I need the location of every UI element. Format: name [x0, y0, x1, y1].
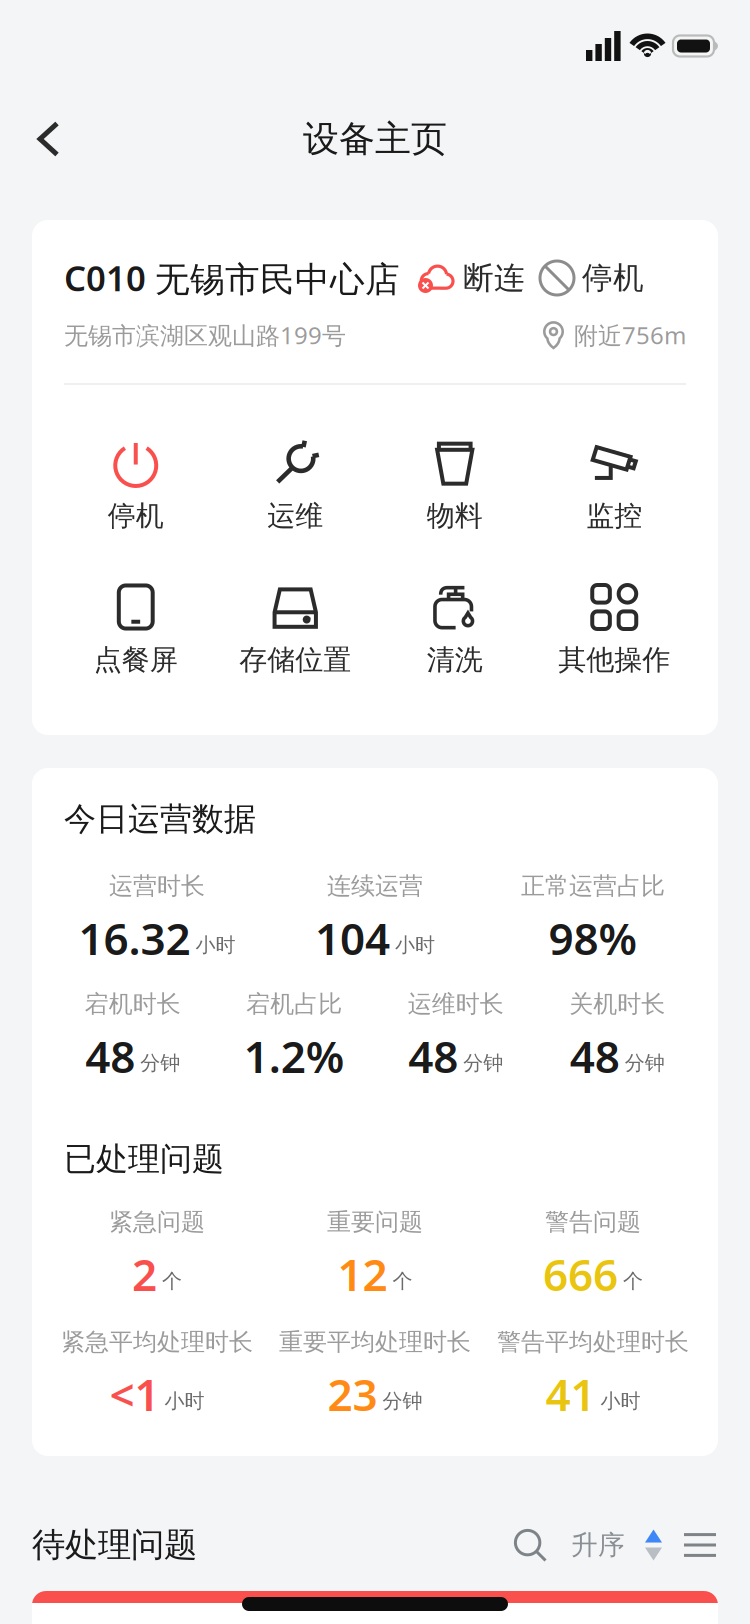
staticText: <1: [109, 1365, 159, 1423]
staticText: 分钟: [463, 1051, 503, 1075]
staticText: 附近756m: [574, 319, 686, 351]
staticText: 666: [543, 1245, 618, 1303]
staticText: 48: [85, 1027, 135, 1085]
staticText: 警告平均处理时长: [497, 1327, 689, 1357]
staticText: 监控: [586, 499, 642, 533]
button[interactable]: 存储位置: [215, 585, 375, 675]
staticText: 1.2%: [244, 1027, 345, 1085]
staticText: 待处理问题: [32, 1524, 197, 1565]
staticText: 小时: [164, 1389, 204, 1413]
staticText: 宕机时长: [85, 989, 181, 1019]
staticText: 设备主页: [303, 117, 447, 161]
staticText: 重要平均处理时长: [279, 1327, 471, 1357]
button[interactable]: 搜索: [513, 1528, 547, 1562]
staticText: 重要问题: [327, 1207, 423, 1237]
staticText: 41: [545, 1365, 595, 1423]
staticText: 紧急问题: [109, 1207, 205, 1237]
staticText: 存储位置: [239, 643, 351, 677]
staticText: 104: [315, 909, 390, 967]
staticText: 分钟: [382, 1389, 422, 1413]
staticText: 23: [327, 1365, 377, 1423]
staticText: 紧急平均处理时长: [61, 1327, 253, 1357]
button[interactable]: 运维: [215, 441, 375, 531]
staticText: 12: [337, 1245, 387, 1303]
staticText: 停机: [582, 259, 644, 297]
button[interactable]: 停机: [56, 441, 215, 531]
staticText: 小时: [395, 933, 435, 957]
staticText: 连续运营: [327, 871, 423, 901]
staticText: 警告问题: [545, 1207, 641, 1237]
staticText: 清洗: [427, 643, 483, 677]
button[interactable]: 点餐屏: [56, 585, 215, 675]
staticText: 16.32: [78, 909, 190, 967]
button[interactable]: 监控: [534, 441, 694, 531]
button[interactable]: 清洗: [375, 585, 534, 675]
staticText: 2: [132, 1245, 157, 1303]
staticText: 停机: [108, 499, 164, 533]
staticText: 无锡市滨湖区观山路199号: [64, 319, 346, 351]
staticText: 个: [623, 1269, 643, 1293]
staticText: 其他操作: [558, 643, 670, 677]
staticText: 关机时长: [569, 989, 665, 1019]
staticText: 个: [162, 1269, 182, 1293]
staticText: 小时: [600, 1389, 640, 1413]
staticText: 物料: [427, 499, 483, 533]
staticText: 已处理问题: [64, 1139, 224, 1179]
staticText: 98%: [548, 909, 637, 967]
button[interactable]: 物料: [375, 441, 534, 531]
button[interactable]: 其他操作: [534, 585, 694, 675]
staticText: 升序: [571, 1529, 625, 1561]
staticText: 断连: [463, 259, 525, 297]
button[interactable]: 返回: [0, 93, 87, 184]
button[interactable]: 筛选: [684, 1532, 716, 1558]
staticText: 48: [408, 1027, 458, 1085]
staticText: 运维时长: [408, 989, 504, 1019]
button[interactable]: 升序: [571, 1529, 662, 1561]
staticText: 正常运营占比: [521, 871, 665, 901]
staticText: 分钟: [140, 1051, 180, 1075]
staticText: 48: [570, 1027, 620, 1085]
staticText: 运营时长: [109, 871, 205, 901]
staticText: 分钟: [625, 1051, 665, 1075]
staticText: 小时: [195, 933, 235, 957]
staticText: C010 无锡市民中心店: [64, 255, 400, 301]
staticText: 宕机占比: [246, 989, 342, 1019]
staticText: 点餐屏: [94, 643, 178, 677]
staticText: 个: [392, 1269, 412, 1293]
staticText: 运维: [267, 499, 323, 533]
staticText: 今日运营数据: [64, 799, 256, 839]
